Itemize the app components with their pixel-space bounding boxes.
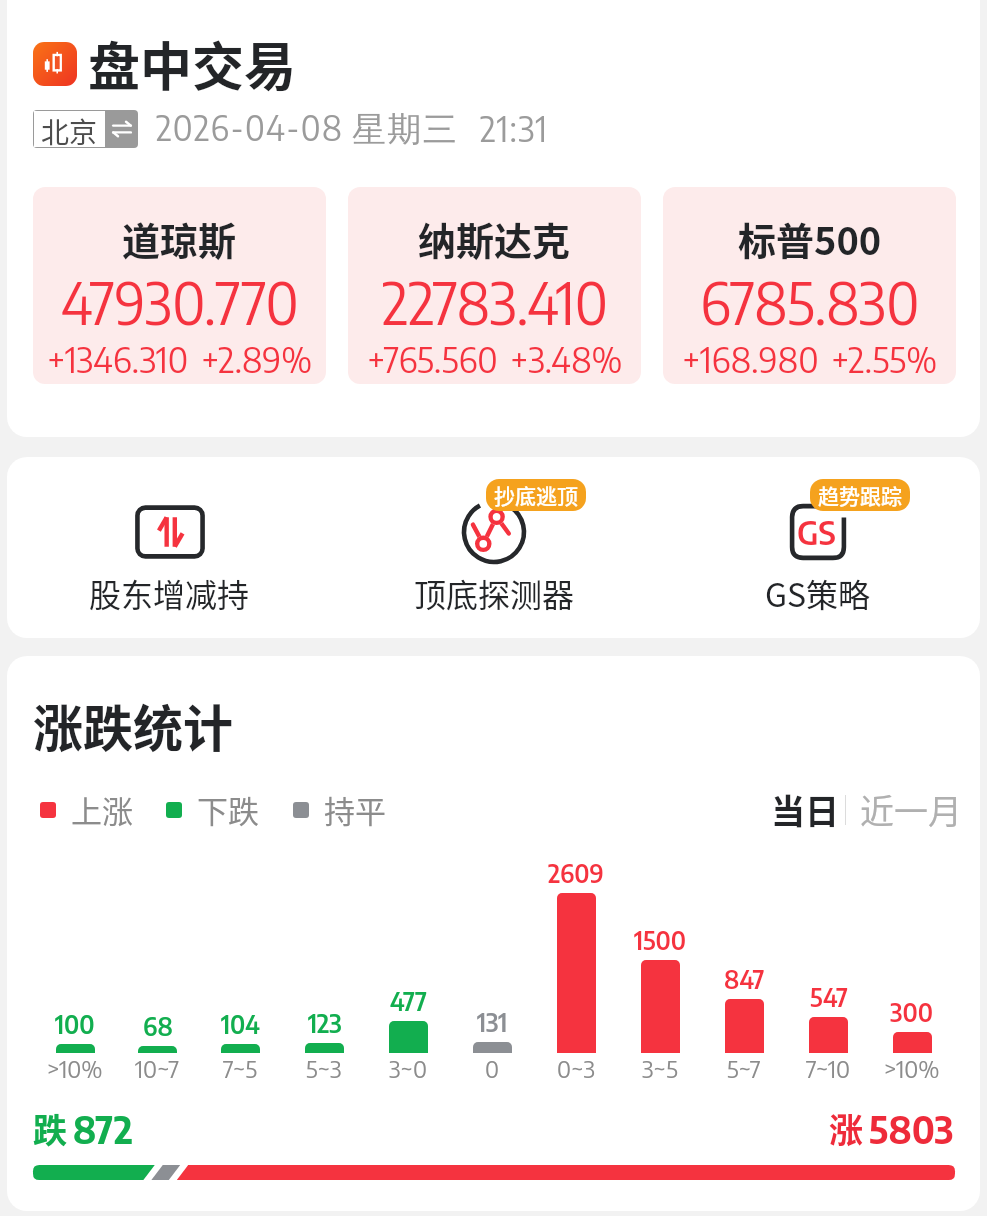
staticText: GS策略 bbox=[765, 570, 871, 616]
staticText: 跌 bbox=[33, 1104, 67, 1153]
staticText: 股东增减持 bbox=[89, 570, 250, 616]
button[interactable]: GS strategy bbox=[656, 457, 980, 616]
staticText: 5~3 bbox=[306, 1053, 342, 1083]
staticText: 当日 bbox=[771, 785, 839, 834]
button[interactable]: 近一月 bbox=[846, 785, 972, 834]
staticText: +765.560 bbox=[367, 337, 498, 381]
button[interactable]: 标普500 bbox=[663, 187, 956, 384]
staticText: 47930.770 bbox=[61, 266, 299, 337]
staticText: 近一月 bbox=[860, 785, 962, 834]
other: Top bottom detector bbox=[457, 495, 531, 569]
staticText: GS bbox=[797, 511, 836, 552]
staticText: 3~0 bbox=[389, 1053, 427, 1083]
staticText: 5803 bbox=[869, 1106, 954, 1152]
staticText: >10% bbox=[884, 1053, 940, 1083]
staticText: +2.55% bbox=[831, 337, 937, 381]
staticText: 1500 bbox=[634, 924, 687, 955]
button[interactable]: 北京 bbox=[33, 110, 138, 148]
staticText: 涨 bbox=[829, 1104, 863, 1153]
staticText: 131 bbox=[477, 1006, 508, 1037]
staticText: 5~7 bbox=[727, 1053, 761, 1083]
staticText: 趋势跟踪 bbox=[818, 480, 902, 510]
staticText: 6785.830 bbox=[700, 266, 920, 337]
staticText: 2609 bbox=[548, 857, 604, 888]
other: Shareholder holdings bbox=[133, 495, 207, 569]
staticText: 上涨 bbox=[71, 787, 133, 832]
staticText: 872 bbox=[73, 1106, 133, 1152]
staticText: 顶底探测器 bbox=[414, 570, 575, 616]
staticText: 847 bbox=[724, 963, 765, 994]
staticText: 123 bbox=[308, 1007, 342, 1038]
staticText: 10~7 bbox=[135, 1053, 180, 1083]
staticText: 纳斯达克 bbox=[418, 211, 571, 266]
staticText: +2.89% bbox=[201, 337, 313, 381]
staticText: 2026-04-08 星期三 bbox=[156, 106, 458, 151]
staticText: 68 bbox=[143, 1010, 173, 1041]
staticText: 盘中交易 bbox=[88, 26, 297, 101]
staticText: 7~5 bbox=[223, 1053, 258, 1083]
staticText: 22783.410 bbox=[382, 266, 608, 337]
staticText: 0~3 bbox=[557, 1053, 595, 1083]
button[interactable]: Top bottom detector bbox=[332, 457, 656, 616]
staticText: 547 bbox=[810, 981, 848, 1012]
staticText: 3~5 bbox=[642, 1053, 678, 1083]
button[interactable]: 道琼斯 bbox=[33, 187, 326, 384]
button[interactable]: 纳斯达克 bbox=[348, 187, 641, 384]
staticText: 100 bbox=[55, 1008, 95, 1039]
staticText: +3.48% bbox=[510, 337, 623, 381]
staticText: >10% bbox=[47, 1053, 103, 1083]
staticText: 21:31 bbox=[480, 107, 549, 150]
staticText: +1346.310 bbox=[47, 337, 189, 381]
button[interactable]: 当日 bbox=[761, 785, 845, 834]
other: GS strategy bbox=[781, 495, 855, 569]
staticText: 104 bbox=[221, 1008, 260, 1039]
staticText: 持平 bbox=[324, 787, 386, 832]
button[interactable]: Shareholder holdings bbox=[7, 457, 332, 616]
staticText: 抄底逃顶 bbox=[494, 480, 578, 510]
staticText: 北京 bbox=[41, 111, 98, 147]
staticText: +168.980 bbox=[682, 337, 819, 381]
staticText: 477 bbox=[390, 985, 427, 1016]
staticText: 涨跌统计 bbox=[33, 689, 233, 761]
staticText: 道琼斯 bbox=[122, 211, 237, 266]
staticText: 300 bbox=[890, 996, 934, 1027]
staticText: 7~10 bbox=[806, 1053, 851, 1083]
staticText: 标普500 bbox=[738, 211, 882, 266]
staticText: 下跌 bbox=[197, 787, 259, 832]
staticText: 0 bbox=[485, 1053, 499, 1083]
